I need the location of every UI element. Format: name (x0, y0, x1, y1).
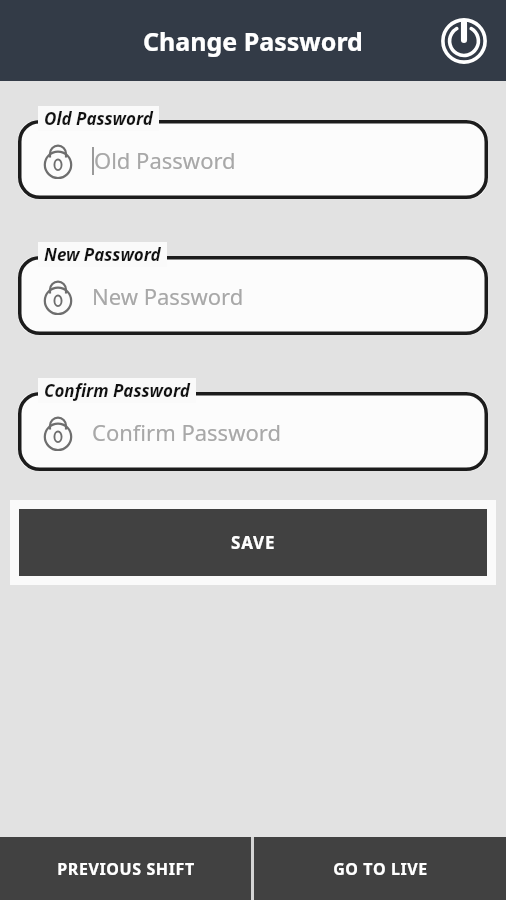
staticText: Confirm Password (92, 417, 281, 447)
button[interactable] (18, 120, 488, 199)
button[interactable]: PREVIOUS SHIFT (0, 837, 251, 900)
staticText: SAVE (231, 531, 276, 554)
staticText: Change Password (143, 24, 363, 58)
button[interactable]: Power / Logout (436, 13, 492, 69)
staticText: New Password (92, 281, 244, 311)
button[interactable]: SAVE (19, 509, 487, 576)
staticText: GO TO LIVE (333, 858, 428, 880)
staticText: Old Password (44, 107, 153, 130)
staticText: Confirm Password (44, 379, 190, 402)
staticText: Old Password (94, 145, 236, 175)
staticText: PREVIOUS SHIFT (57, 858, 195, 880)
button[interactable] (18, 256, 488, 335)
staticText: New Password (44, 243, 161, 266)
button[interactable] (18, 392, 488, 471)
button[interactable]: GO TO LIVE (254, 837, 506, 900)
